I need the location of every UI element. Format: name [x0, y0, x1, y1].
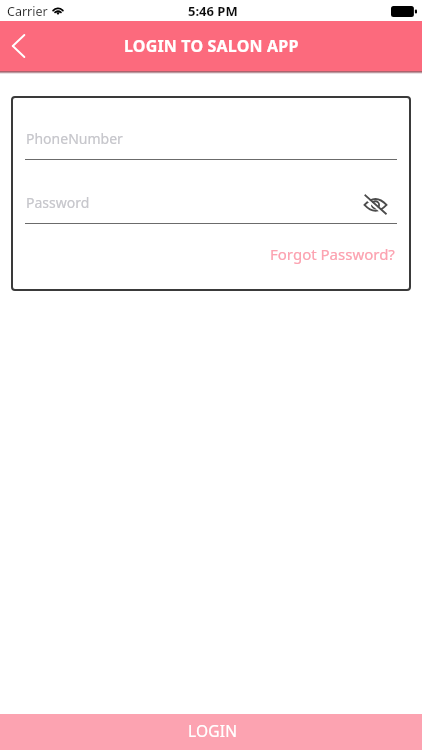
- staticText: PhoneNumber: [26, 129, 123, 148]
- button[interactable]: Password: [25, 187, 397, 224]
- button[interactable]: LOGIN: [0, 714, 422, 750]
- staticText: LOGIN TO SALON APP: [124, 35, 299, 57]
- staticText: 5:46 PM: [188, 2, 238, 20]
- staticText: Password: [26, 193, 90, 212]
- button[interactable]: PhoneNumber: [25, 123, 397, 160]
- staticText: Carrier: [7, 3, 48, 20]
- staticText: Forgot Password?: [270, 244, 395, 264]
- button[interactable]: Show password: [357, 191, 393, 217]
- button[interactable]: Back: [0, 28, 36, 64]
- staticText: LOGIN: [188, 720, 238, 741]
- button[interactable]: Forgot Password?: [269, 244, 396, 264]
